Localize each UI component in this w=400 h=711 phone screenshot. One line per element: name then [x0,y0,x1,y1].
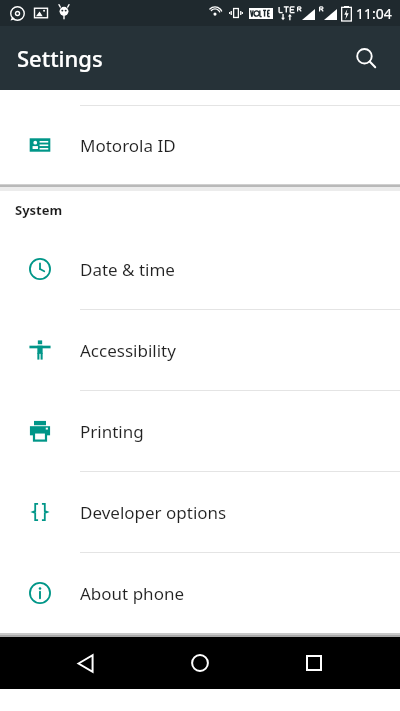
staticText: Developer options [80,501,227,524]
button[interactable]: Home [172,637,228,689]
button[interactable]: Recent apps [286,637,342,689]
staticText: Date & time [80,258,175,281]
button[interactable]: Printing [0,391,400,471]
button[interactable]: Motorola ID [0,106,400,184]
button[interactable]: Search [342,34,390,82]
button[interactable]: Back [58,637,114,689]
staticText: Settings [17,43,103,73]
staticText: Accessibility [80,339,176,362]
button[interactable]: Developer options [0,472,400,552]
button[interactable]: Date & time [0,229,400,309]
staticText: About phone [80,582,185,605]
button[interactable]: About phone [0,553,400,633]
button[interactable]: Accessibility [0,310,400,390]
staticText: Motorola ID [80,134,176,157]
staticText: System [15,201,63,219]
staticText: Printing [80,420,144,443]
staticText: 11:04 [356,4,392,23]
